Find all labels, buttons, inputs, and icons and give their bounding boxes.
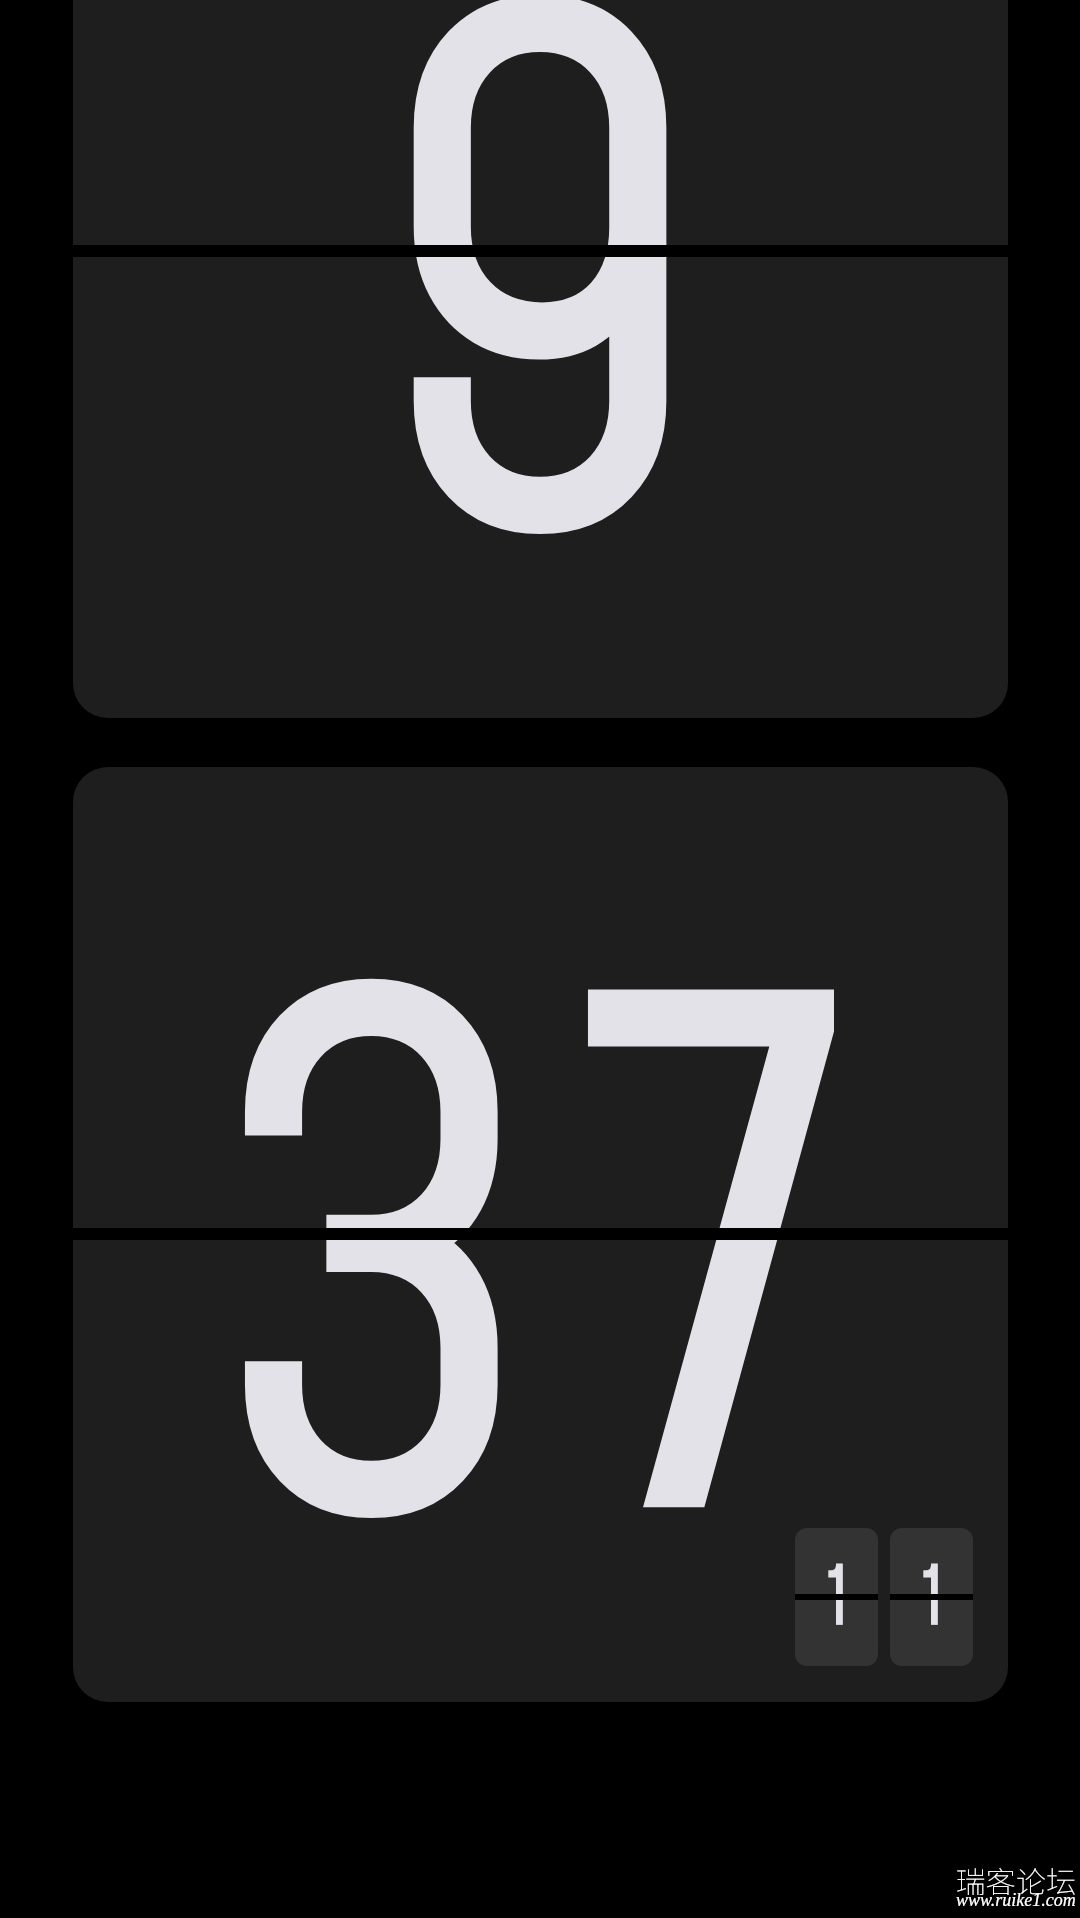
button[interactable]: Minutes [73, 767, 1008, 1702]
staticText: 37 [224, 841, 895, 1765]
staticText: www.ruike1.com [956, 1890, 1076, 1910]
staticText: 瑞客论坛 [956, 1858, 1076, 1901]
button[interactable]: Seconds [795, 1528, 878, 1666]
staticText: 1 [923, 1547, 944, 1654]
staticText: 9 [378, 0, 760, 781]
button[interactable]: Seconds [890, 1528, 973, 1666]
button[interactable]: Hours [73, 0, 1008, 718]
staticText: 1 [828, 1547, 849, 1654]
